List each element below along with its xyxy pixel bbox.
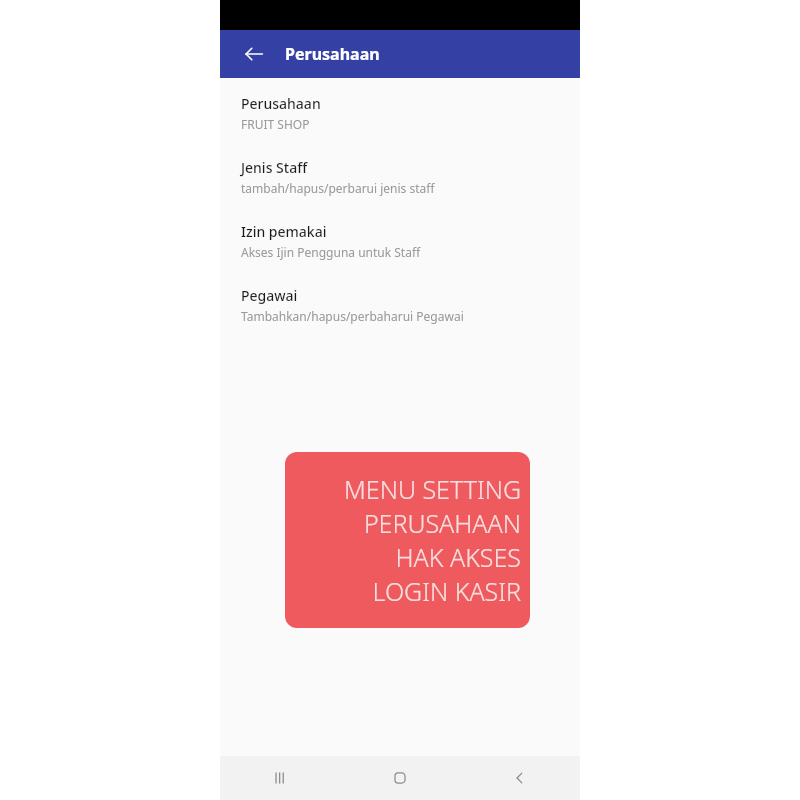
staticText: Izin pemakai: [241, 222, 327, 241]
button[interactable]: Back: [460, 756, 580, 800]
button[interactable]: Jenis Staff: [220, 156, 580, 198]
staticText: Perusahaan: [285, 43, 380, 65]
button[interactable]: Izin pemakai: [220, 220, 580, 262]
staticText: Pegawai: [241, 286, 298, 305]
staticText: Jenis Staff: [241, 158, 308, 177]
staticText: tambah/hapus/perbarui jenis staff: [241, 180, 435, 196]
button[interactable]: Recent apps: [220, 756, 340, 800]
button[interactable]: Home: [340, 756, 460, 800]
button[interactable]: Back: [230, 30, 278, 78]
staticText: MENU SETTING PERUSAHAAN HAK AKSES LOGIN …: [285, 472, 521, 608]
staticText: FRUIT SHOP: [241, 116, 310, 132]
staticText: Tambahkan/hapus/perbaharui Pegawai: [241, 308, 464, 324]
button[interactable]: Perusahaan: [220, 92, 580, 134]
button[interactable]: MENU SETTING PERUSAHAAN HAK AKSES LOGIN …: [285, 452, 530, 628]
button[interactable]: Pegawai: [220, 284, 580, 326]
staticText: Akses Ijin Pengguna untuk Staff: [241, 244, 421, 260]
staticText: Perusahaan: [241, 94, 321, 113]
